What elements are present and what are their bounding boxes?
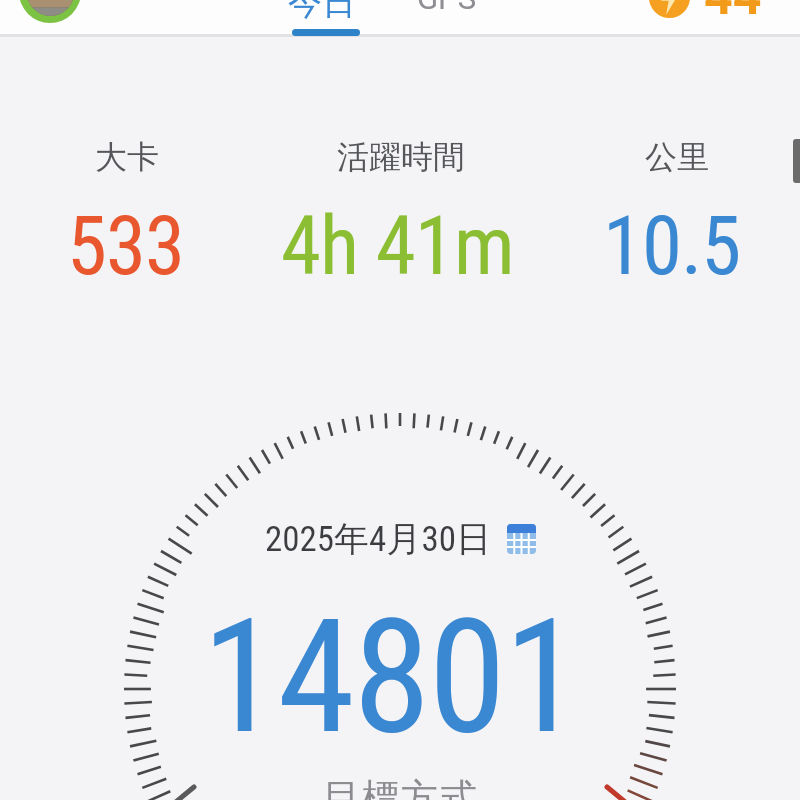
- button[interactable]: 4h 41m: [247, 199, 547, 294]
- staticText: 44: [704, 0, 762, 27]
- button[interactable]: 今日: [288, 0, 356, 24]
- button[interactable]: 10.5: [522, 199, 800, 294]
- staticText: 大卡: [95, 137, 159, 177]
- button[interactable]: [649, 0, 690, 18]
- staticText: 2025年4月30日: [265, 517, 491, 561]
- button[interactable]: [19, 0, 81, 23]
- staticText: 10.5: [603, 199, 741, 294]
- staticText: 活躍時間: [337, 137, 465, 177]
- staticText: 目標方式: [322, 774, 478, 800]
- staticText: 公里: [645, 137, 709, 177]
- staticText: 533: [67, 199, 184, 294]
- button[interactable]: 2025年4月30日: [265, 517, 536, 561]
- staticText: 14801: [202, 585, 580, 769]
- staticText: 4h 41m: [281, 199, 514, 294]
- staticText: 今日: [288, 0, 356, 24]
- staticText: GPS: [417, 0, 477, 16]
- button[interactable]: 533: [0, 199, 275, 294]
